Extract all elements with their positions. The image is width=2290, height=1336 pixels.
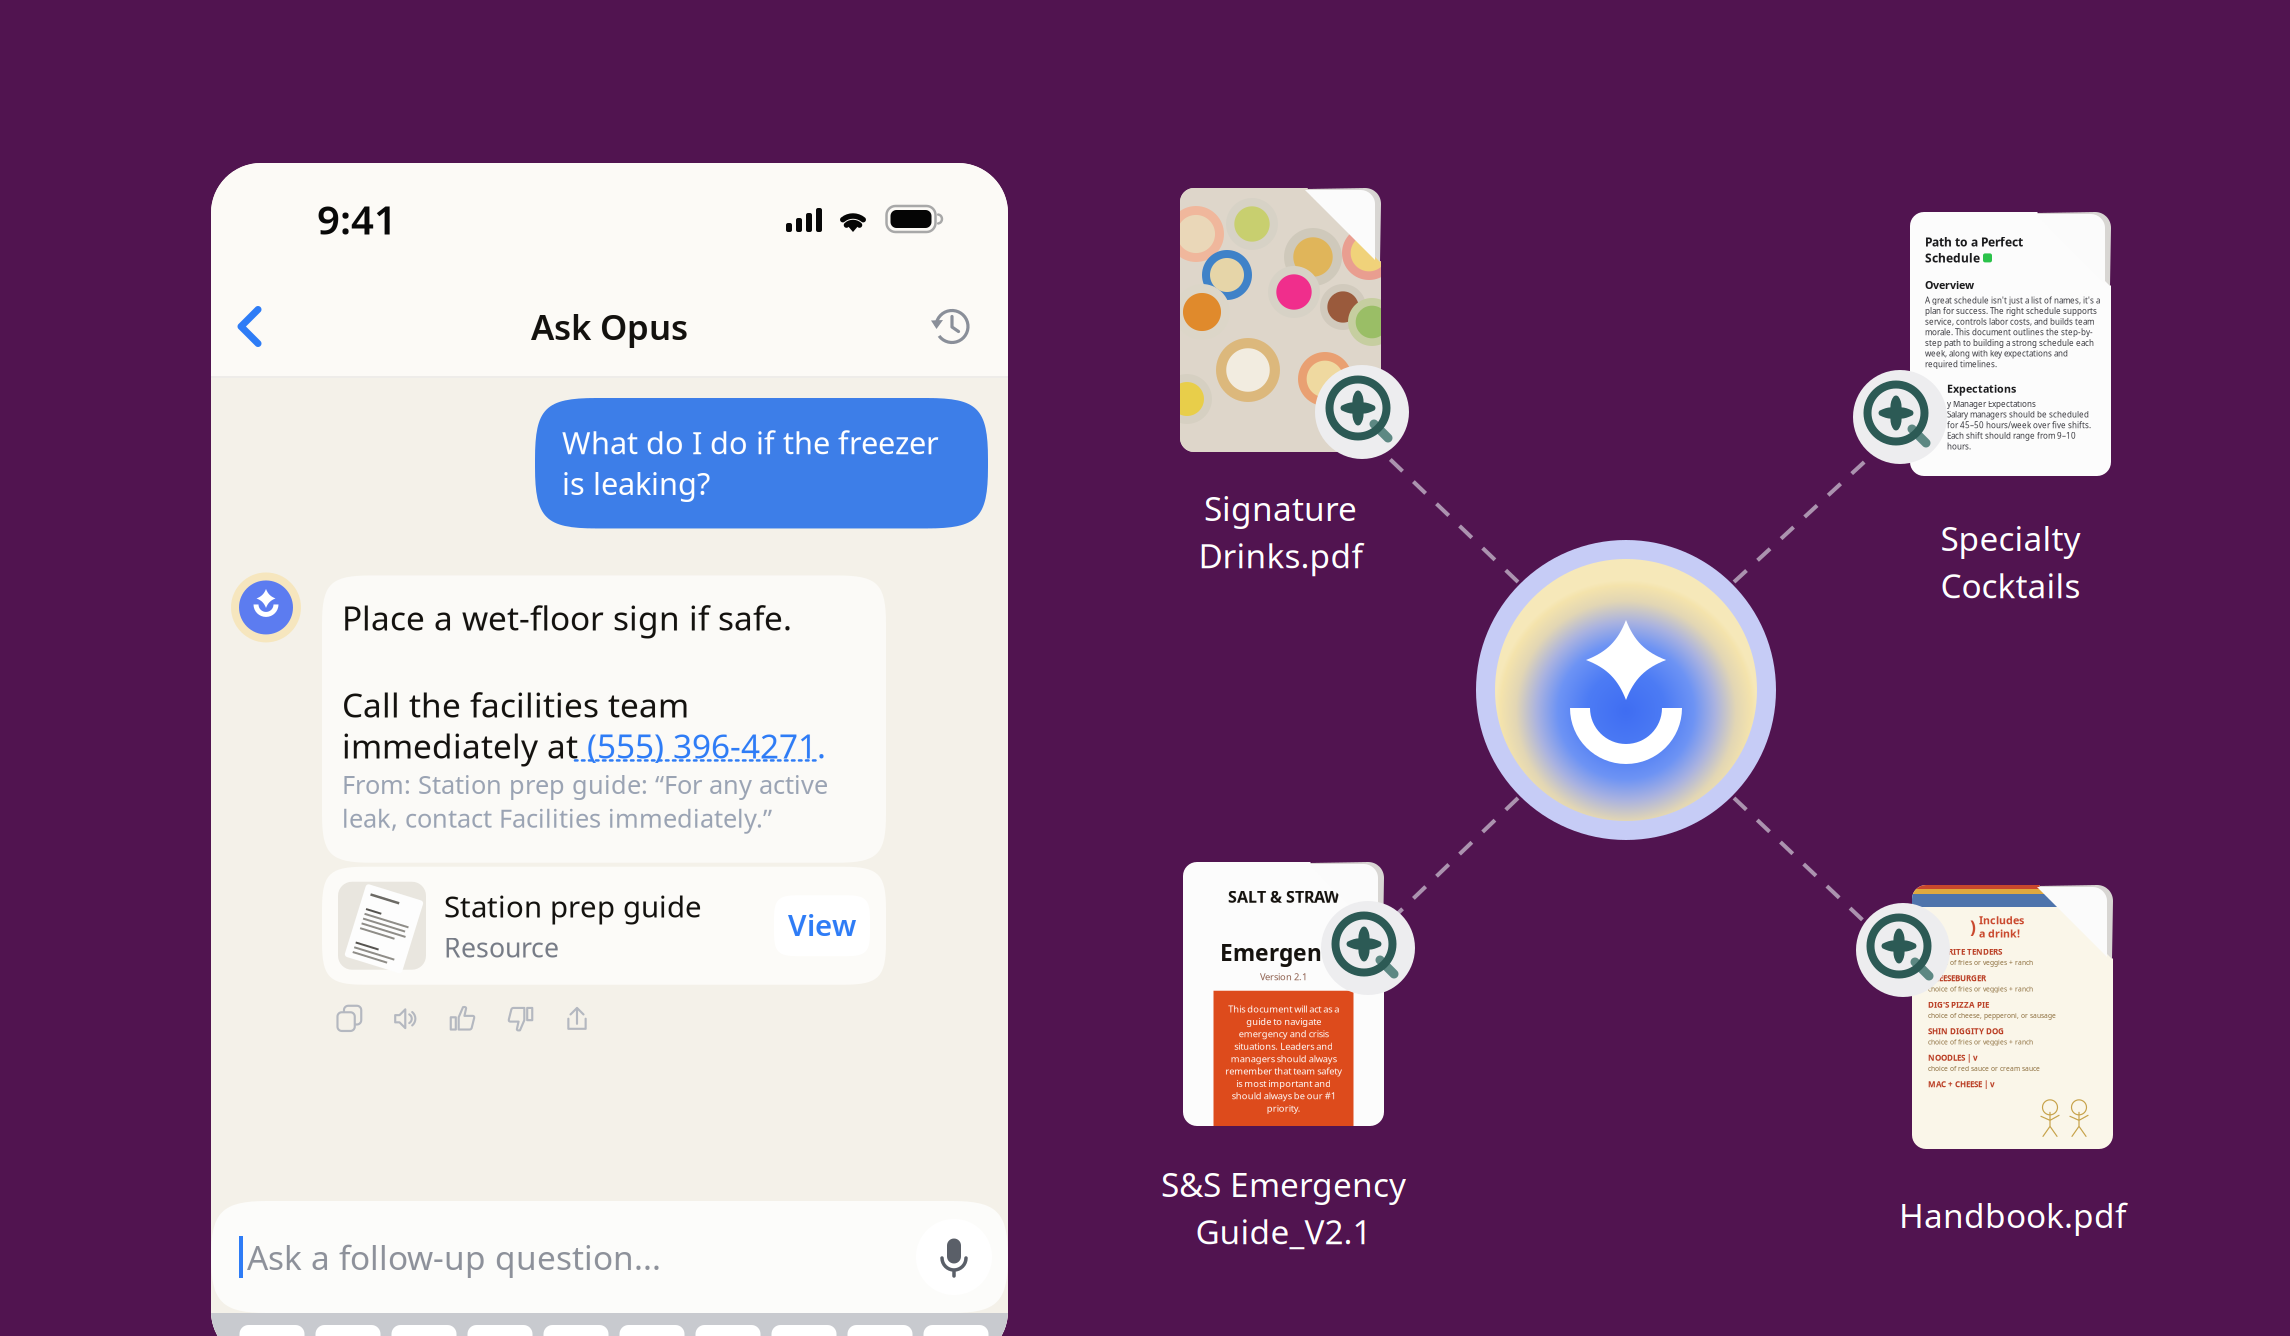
staticText: Overview bbox=[1925, 278, 1974, 292]
staticText: ) bbox=[1970, 915, 1976, 938]
staticText: SALT & STRAW bbox=[1228, 886, 1339, 907]
staticText: Station prep guide bbox=[444, 886, 702, 925]
staticText: SHIN DIGGITY DOG bbox=[1928, 1026, 2004, 1036]
staticText: This document will act as a guide to nav… bbox=[1225, 1003, 1342, 1114]
staticText: Guide_V2.1 bbox=[1195, 1209, 1371, 1254]
staticText: What do I do if the freezer is leaking? bbox=[562, 422, 939, 503]
staticText: DIG'S PIZZA PIE bbox=[1928, 999, 1989, 1010]
staticText: choice of red sauce or cream sauce bbox=[1928, 1064, 2040, 1073]
staticText: Signature bbox=[1204, 486, 1357, 530]
staticText: View bbox=[788, 905, 856, 944]
button[interactable]: Share bbox=[551, 993, 603, 1045]
staticText: Schedule bbox=[1925, 250, 1980, 266]
staticText: Ask Opus bbox=[531, 303, 688, 349]
button[interactable]: Back bbox=[217, 291, 277, 361]
staticText: From: Station prep guide: “For any activ… bbox=[342, 767, 828, 835]
staticText: Resource bbox=[444, 929, 559, 965]
staticText: Handbook.pdf bbox=[1899, 1193, 2126, 1237]
staticText: Specialty bbox=[1940, 516, 2080, 560]
staticText: CHEESEBURGER bbox=[1928, 973, 1986, 983]
button[interactable]: Dictate bbox=[916, 1219, 992, 1295]
button[interactable]: Bad response bbox=[494, 993, 546, 1045]
staticText: a drink! bbox=[1979, 926, 2020, 940]
button[interactable]: Good response bbox=[437, 993, 489, 1045]
staticText: choice of fries or veggies + ranch bbox=[1928, 984, 2033, 993]
staticText: 9:41 bbox=[317, 192, 397, 245]
staticText: FAVORITE TENDERS bbox=[1928, 946, 2002, 957]
staticText: immediately at bbox=[342, 723, 587, 768]
staticText: Drinks.pdf bbox=[1198, 533, 1362, 578]
staticText: choice of fries or veggies + ranch bbox=[1928, 958, 2033, 967]
button[interactable]: Read aloud bbox=[380, 993, 432, 1045]
staticText: Version 2.1 bbox=[1260, 970, 1307, 983]
staticText: NOODLES | v bbox=[1928, 1052, 1978, 1063]
staticText: choice of fries or veggies + ranch bbox=[1928, 1037, 2033, 1046]
staticText: choice of cheese, pepperoni, or sausage bbox=[1928, 1011, 2056, 1020]
staticText: A great schedule isn't just a list of na… bbox=[1925, 295, 2100, 369]
staticText: (555) 396-4271. bbox=[587, 723, 826, 768]
staticText: y Manager Expectations Salary managers s… bbox=[1947, 399, 2091, 452]
staticText: S&S Emergency bbox=[1161, 1162, 1406, 1206]
staticText: Expectations bbox=[1947, 381, 2016, 396]
staticText: MAC + CHEESE | v bbox=[1928, 1079, 1995, 1089]
staticText: Emergency bbox=[1220, 937, 1347, 967]
staticText: Includes bbox=[1979, 913, 2024, 927]
button[interactable]: View bbox=[774, 895, 870, 956]
button[interactable]: History bbox=[922, 291, 982, 361]
button[interactable]: Copy bbox=[323, 993, 375, 1045]
staticText: Path to a Perfect bbox=[1925, 234, 2023, 250]
staticText: Call the facilities team bbox=[342, 682, 689, 727]
staticText: Ask a follow-up question... bbox=[247, 1235, 661, 1279]
staticText: Place a wet-floor sign if safe. bbox=[342, 595, 792, 640]
staticText: Cocktails bbox=[1940, 563, 2080, 608]
